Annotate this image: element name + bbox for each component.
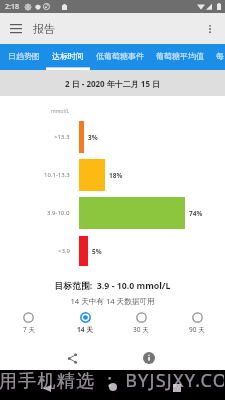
staticText: 30 天 xyxy=(133,325,149,334)
button[interactable]: 14 天 xyxy=(57,312,113,334)
staticText: 2 日 - 2020 年十二月 15 日 xyxy=(65,78,161,89)
staticText: 2:18 xyxy=(5,2,19,12)
staticText: 3% xyxy=(88,133,98,142)
staticText: 90 天 xyxy=(189,325,205,334)
staticText: 14 天中有 14 天数据可用 xyxy=(0,296,225,306)
staticText: <3.9 xyxy=(58,247,70,255)
button[interactable]: 达标时间 xyxy=(46,44,90,70)
button[interactable]: Home xyxy=(109,383,117,391)
staticText: 用手机精选 : BYJSJXY.CO xyxy=(0,368,224,393)
staticText: 74% xyxy=(189,209,203,218)
staticText: mmol/L xyxy=(51,108,70,115)
staticText: 达标时间 xyxy=(52,51,84,61)
staticText: 低葡萄糖事件 xyxy=(96,51,144,61)
button[interactable]: Info xyxy=(139,348,159,368)
staticText: 目标范围: 3.9 - 10.0 mmol/L xyxy=(0,280,225,292)
button[interactable]: 葡萄糖平均值 xyxy=(150,44,210,70)
staticText: >13.3 xyxy=(54,133,70,141)
staticText: 报告 xyxy=(33,22,55,36)
button[interactable]: 低葡萄糖事件 xyxy=(90,44,150,70)
button[interactable]: Share xyxy=(62,348,82,368)
staticText: 18% xyxy=(109,171,123,180)
staticText: 10.1-13.3 xyxy=(44,171,70,179)
staticText: 14 天 xyxy=(77,325,93,334)
staticText: 7 天 xyxy=(23,325,35,334)
staticText: 日趋势图 xyxy=(8,51,40,61)
button[interactable]: 90 天 xyxy=(169,312,225,334)
button[interactable]: 7 天 xyxy=(0,312,57,334)
staticText: 葡萄糖平均值 xyxy=(156,51,204,61)
button[interactable]: 每日 xyxy=(210,44,225,70)
button[interactable]: More options xyxy=(200,19,220,39)
button[interactable]: Menu xyxy=(6,19,26,39)
staticText: 5% xyxy=(92,247,102,256)
staticText: 3.9-10.0 xyxy=(47,209,70,217)
staticText: 每日 xyxy=(216,51,225,61)
button[interactable]: Recent apps xyxy=(173,384,181,392)
button[interactable]: 30 天 xyxy=(113,312,169,334)
button[interactable]: Back xyxy=(43,385,51,392)
button[interactable]: 日趋势图 xyxy=(2,44,46,70)
